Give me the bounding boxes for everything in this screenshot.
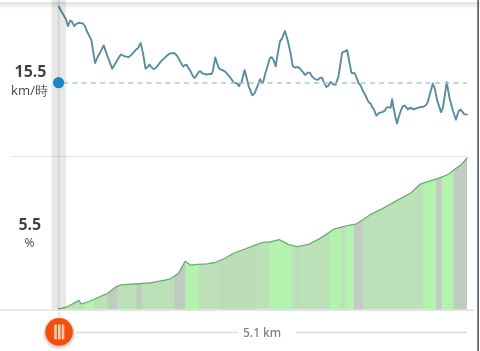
button[interactable]: Playback controls [0, 0, 480, 351]
